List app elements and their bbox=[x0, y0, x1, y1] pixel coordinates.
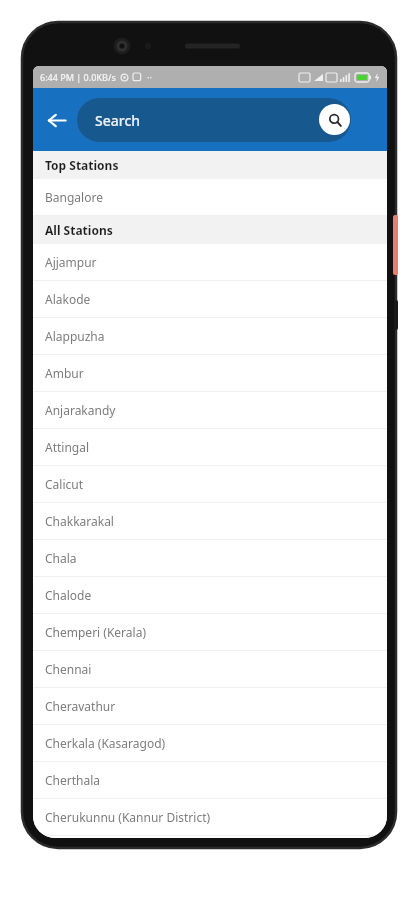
button[interactable]: Anjarakandy bbox=[33, 392, 387, 428]
button[interactable]: Bangalore bbox=[33, 179, 387, 215]
button[interactable]: Chakkarakal bbox=[33, 503, 387, 539]
staticText: ·· bbox=[147, 71, 152, 83]
staticText: Ambur bbox=[45, 365, 84, 381]
staticText: Calicut bbox=[45, 476, 84, 492]
staticText: All Stations bbox=[45, 222, 113, 238]
staticText: Chala bbox=[45, 550, 77, 566]
button[interactable]: Chala bbox=[33, 540, 387, 576]
button[interactable]: Alakode bbox=[33, 281, 387, 317]
staticText: Chemperi (Kerala) bbox=[45, 624, 146, 640]
staticText: Cherukunnu (Kannur District) bbox=[45, 809, 211, 825]
staticText: Attingal bbox=[45, 439, 90, 455]
staticText: Anjarakandy bbox=[45, 402, 116, 418]
staticText: Ajjampur bbox=[45, 254, 97, 270]
staticText: Chennai bbox=[45, 661, 92, 677]
staticText: Alakode bbox=[45, 291, 91, 307]
staticText: Top Stations bbox=[45, 157, 119, 173]
button[interactable]: Ajjampur bbox=[33, 244, 387, 280]
button[interactable]: Chennai bbox=[33, 651, 387, 687]
staticText: Cheravathur bbox=[45, 698, 116, 714]
button[interactable]: Search bbox=[319, 104, 350, 135]
button[interactable]: Cherthala bbox=[33, 762, 387, 798]
staticText: Cherthala bbox=[45, 772, 101, 788]
staticText: Cheruvathur bbox=[45, 836, 117, 838]
button[interactable]: Cherkala (Kasaragod) bbox=[33, 725, 387, 761]
button[interactable]: Cherukunnu (Kannur District) bbox=[33, 799, 387, 835]
button[interactable]: Cheravathur bbox=[33, 688, 387, 724]
button[interactable]: Alappuzha bbox=[33, 318, 387, 354]
button[interactable]: Chemperi (Kerala) bbox=[33, 614, 387, 650]
staticText: Alappuzha bbox=[45, 328, 105, 344]
button[interactable]: Attingal bbox=[33, 429, 387, 465]
button[interactable]: Ambur bbox=[33, 355, 387, 391]
button[interactable]: Back bbox=[39, 103, 73, 137]
staticText: Chalode bbox=[45, 587, 92, 603]
button[interactable]: Chalode bbox=[33, 577, 387, 613]
staticText: 6:44 PM | 0.0KB/s bbox=[40, 71, 116, 83]
button[interactable]: Calicut bbox=[33, 466, 387, 502]
button[interactable]: Search bbox=[77, 98, 351, 142]
button[interactable]: Cheruvathur bbox=[33, 836, 387, 838]
staticText: Cherkala (Kasaragod) bbox=[45, 735, 166, 751]
staticText: Search bbox=[95, 111, 141, 130]
staticText: Bangalore bbox=[45, 189, 103, 205]
staticText: Chakkarakal bbox=[45, 513, 114, 529]
